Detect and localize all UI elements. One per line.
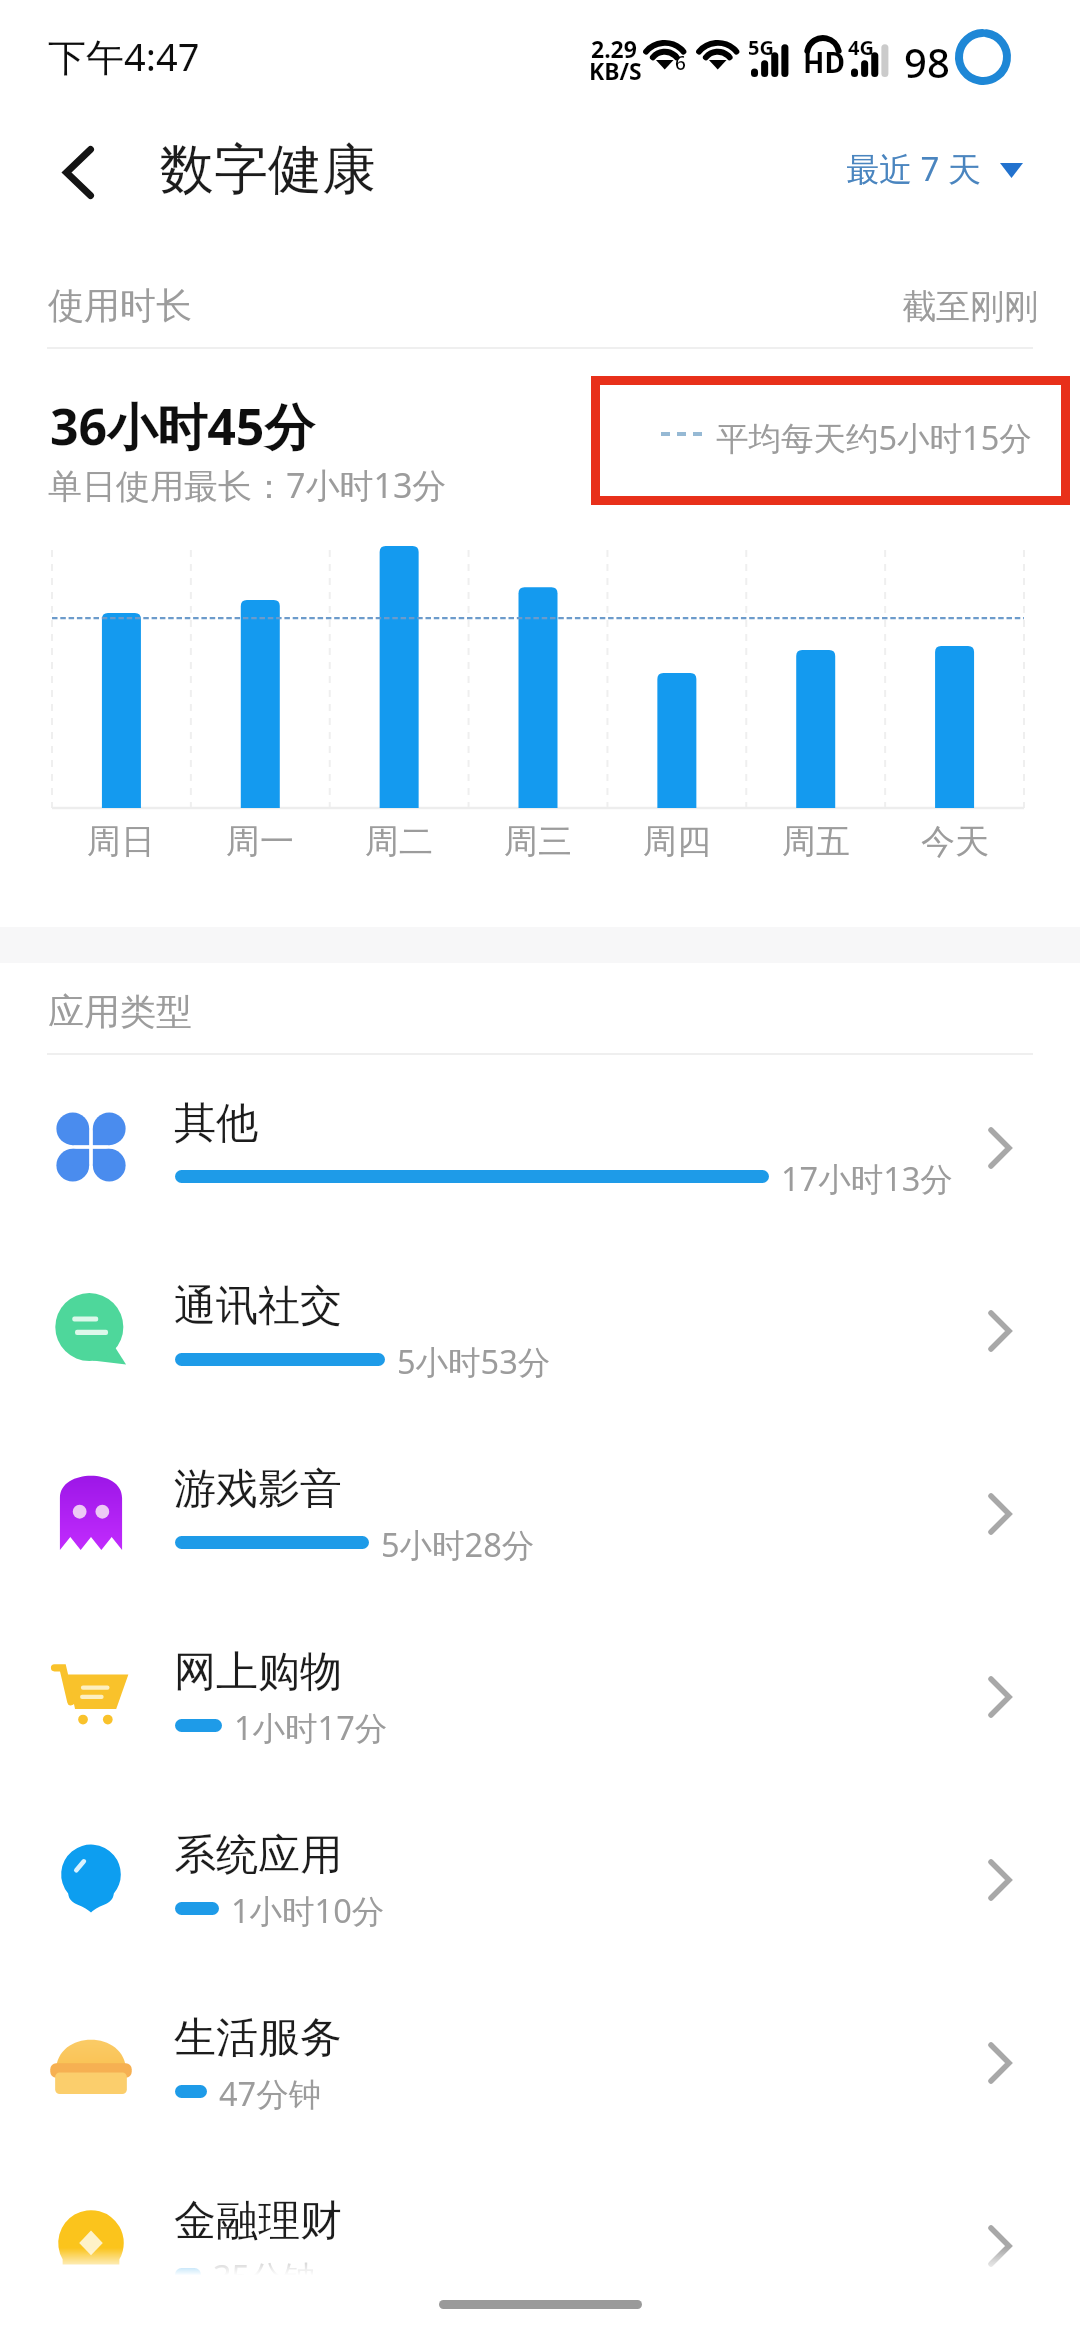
button[interactable]: 网上购物	[0, 1605, 1080, 1788]
button[interactable]: 通讯社交	[0, 1239, 1080, 1422]
staticText: 1小时17分	[234, 1705, 388, 1749]
staticText: 其他	[174, 1097, 258, 1150]
staticText: 6	[675, 50, 686, 76]
staticText: 5小时28分	[381, 1522, 535, 1566]
staticText: 周二	[365, 820, 433, 863]
staticText: 游戏影音	[174, 1463, 342, 1516]
staticText: 周三	[504, 820, 572, 863]
staticText: 35分钟	[213, 2254, 316, 2298]
staticText: 数字健康	[160, 136, 376, 204]
staticText: 5小时53分	[397, 1339, 551, 1383]
staticText: 47分钟	[219, 2071, 322, 2115]
staticText: 36小时45分	[50, 392, 315, 460]
staticText: 最近 7 天	[846, 146, 982, 191]
staticText: 周一	[226, 820, 294, 863]
button[interactable]: 最近 7 天	[846, 146, 1023, 191]
staticText: 生活服务	[174, 2012, 342, 2065]
staticText: 98	[904, 35, 950, 89]
staticText: 平均每天约5小时15分	[716, 415, 1032, 459]
staticText: 今天	[921, 820, 989, 863]
staticText: 截至刚刚	[902, 285, 1038, 328]
button[interactable]: 其他	[0, 1056, 1080, 1239]
staticText: 周五	[782, 820, 850, 863]
button[interactable]: 系统应用	[0, 1788, 1080, 1971]
button[interactable]: Back	[36, 128, 126, 218]
staticText: 单日使用最长：7小时13分	[48, 462, 447, 508]
staticText: HD	[803, 43, 845, 81]
button[interactable]: 游戏影音	[0, 1422, 1080, 1605]
staticText: 网上购物	[174, 1646, 342, 1699]
button[interactable]: 生活服务	[0, 1971, 1080, 2154]
staticText: 通讯社交	[174, 1280, 342, 1333]
staticText: 2.29	[591, 33, 637, 64]
staticText: 系统应用	[174, 1829, 342, 1882]
button[interactable]: 金融理财	[0, 2154, 1080, 2337]
staticText: 周日	[87, 820, 155, 863]
staticText: 周四	[643, 820, 711, 863]
staticText: 使用时长	[48, 283, 192, 328]
staticText: 4G	[848, 34, 874, 61]
staticText: 1小时10分	[231, 1888, 385, 1932]
staticText: 金融理财	[174, 2195, 342, 2248]
staticText: 下午4:47	[48, 30, 200, 82]
staticText: 应用类型	[48, 989, 192, 1034]
staticText: KB/S	[589, 55, 642, 86]
staticText: 17小时13分	[781, 1156, 953, 1200]
staticText: 5G	[748, 34, 774, 61]
